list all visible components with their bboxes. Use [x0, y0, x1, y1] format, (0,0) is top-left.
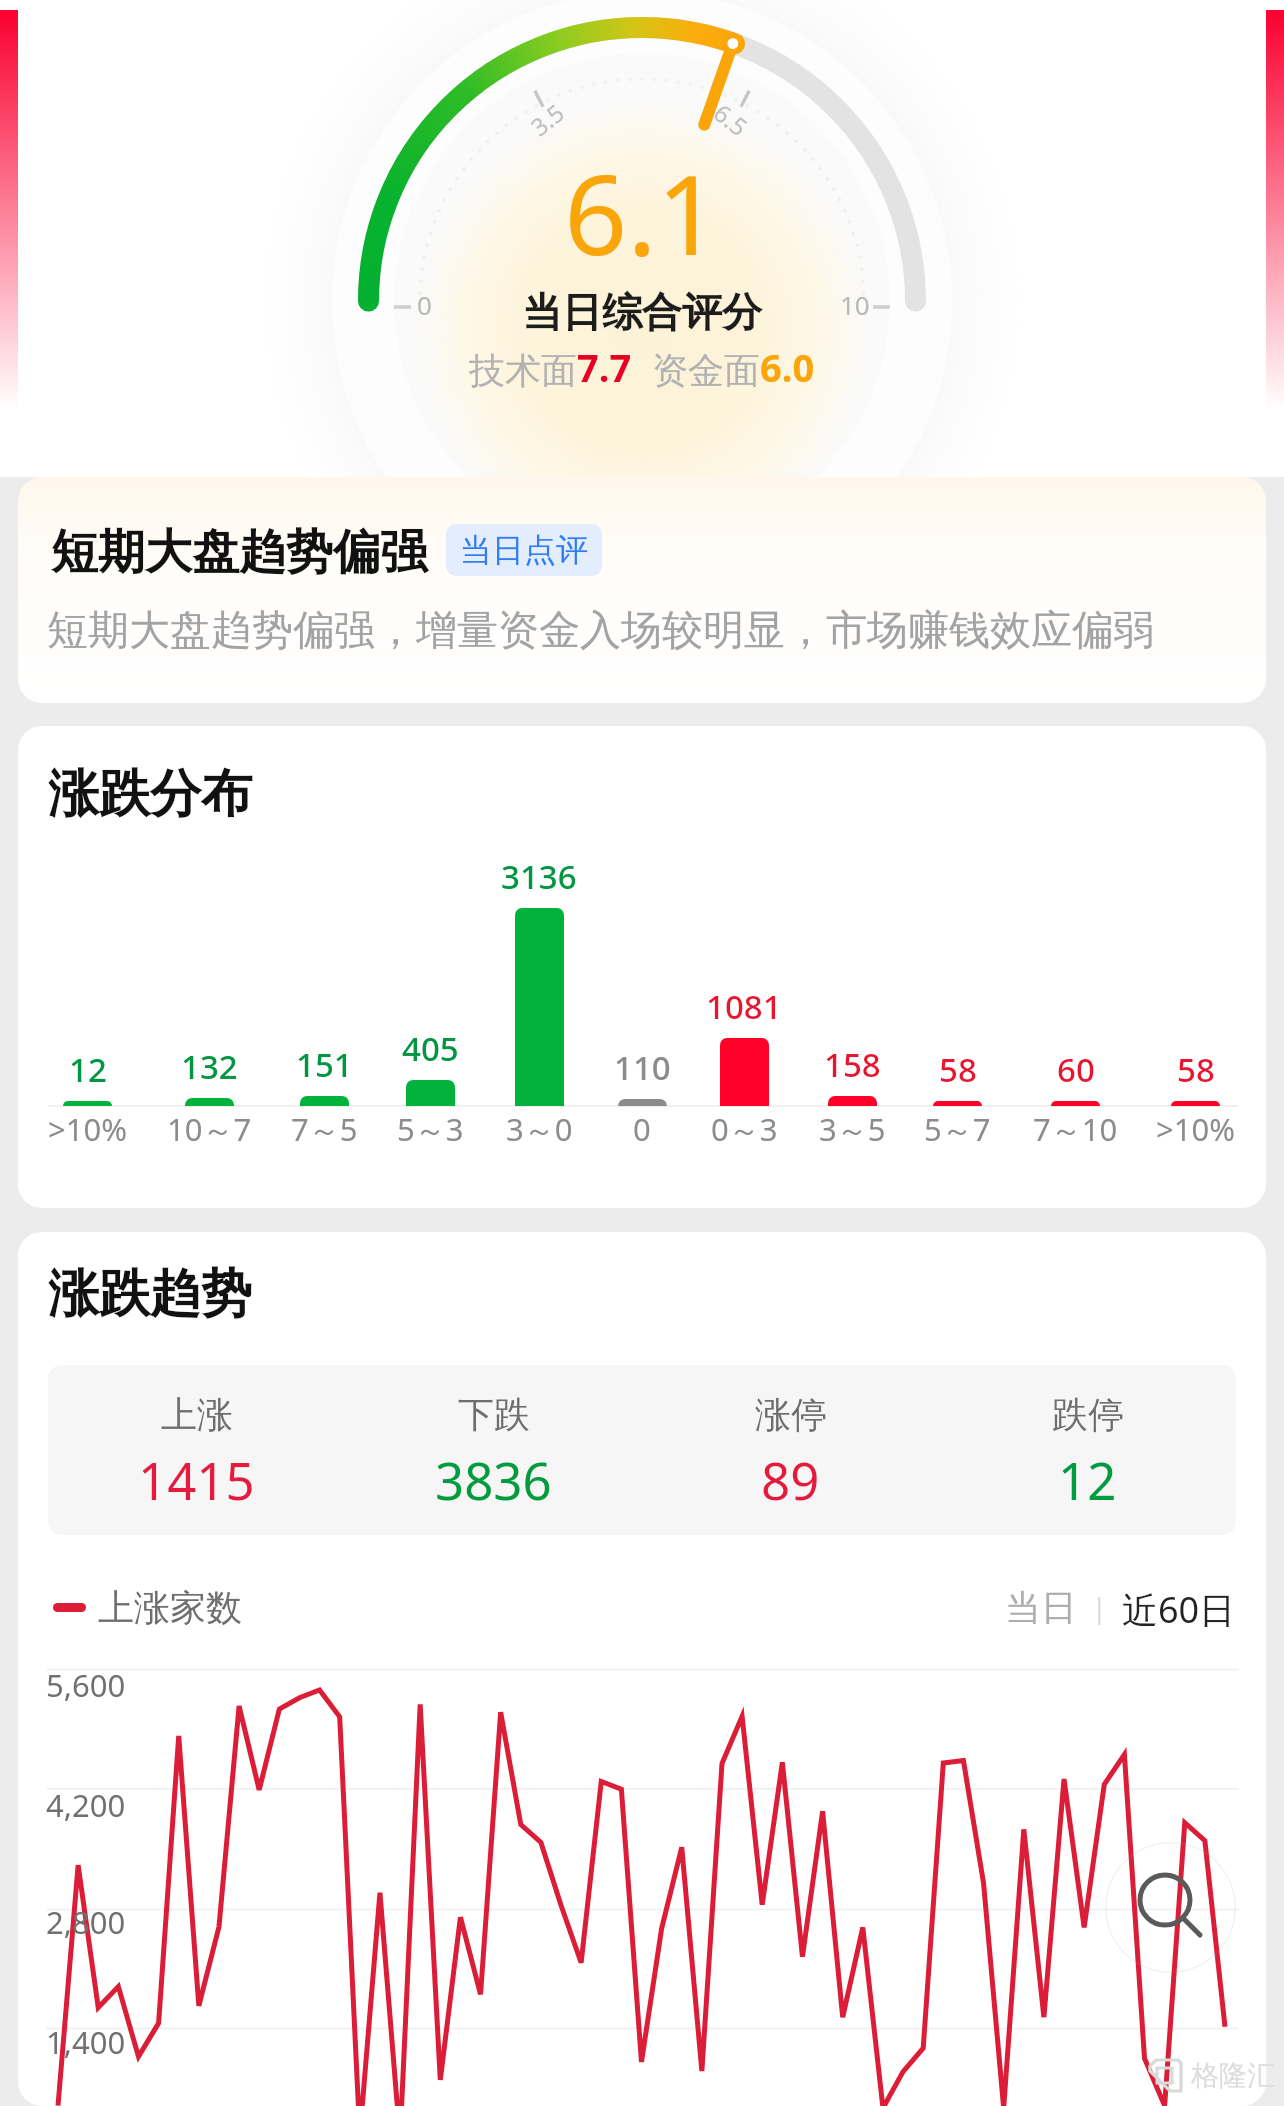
staticText: 7～10	[1033, 1108, 1118, 1150]
staticText: 当日点评	[460, 530, 588, 570]
button[interactable]: 58	[1125, 816, 1265, 1106]
staticText: 3836	[435, 1445, 552, 1514]
staticText: 58	[1177, 1047, 1215, 1092]
staticText: 上涨家数	[98, 1585, 242, 1629]
staticText: 短期大盘趋势偏强，增量资金入场较明显，市场赚钱效应偏弱	[47, 605, 1154, 657]
staticText: 12	[1058, 1445, 1117, 1514]
staticText: 短期大盘趋势偏强	[51, 523, 427, 582]
staticText: 110	[614, 1045, 671, 1090]
staticText: 5,600	[46, 1664, 126, 1706]
button[interactable]: 涨停	[642, 1386, 939, 1514]
staticText: 3～0	[506, 1108, 573, 1150]
staticText: 3.5	[523, 96, 570, 143]
staticText: >10%	[1156, 1108, 1235, 1150]
button[interactable]: 12	[18, 816, 157, 1106]
staticText: 7～5	[291, 1108, 358, 1150]
staticText: 涨跌分布	[48, 762, 252, 826]
staticText: 当日	[1005, 1585, 1077, 1629]
staticText: 0～3	[711, 1108, 778, 1150]
staticText: 3～5	[819, 1108, 886, 1150]
staticText: 跌停	[1052, 1392, 1124, 1437]
staticText: 4,200	[46, 1784, 126, 1826]
staticText: 151	[296, 1042, 353, 1087]
button[interactable]: 151	[254, 816, 394, 1106]
staticText: 涨跌趋势	[48, 1262, 252, 1326]
staticText: 158	[824, 1042, 881, 1087]
staticText: 资金面	[652, 348, 760, 393]
staticText: 89	[761, 1445, 820, 1514]
button[interactable]: 1081	[674, 816, 814, 1106]
staticText: 7.7	[577, 341, 632, 393]
staticText: 1415	[138, 1445, 255, 1514]
button[interactable]: 132	[139, 816, 279, 1106]
button[interactable]: 110	[572, 816, 712, 1106]
staticText: 下跌	[458, 1392, 530, 1437]
staticText: 405	[402, 1026, 459, 1071]
staticText: 0	[633, 1108, 651, 1150]
button[interactable]: Search	[1105, 1842, 1236, 1973]
staticText: 技术面	[469, 348, 577, 393]
staticText: 涨停	[755, 1392, 827, 1437]
staticText: 格隆汇	[1191, 2058, 1275, 2093]
staticText: 1081	[706, 984, 782, 1029]
staticText: |	[1077, 1588, 1122, 1626]
button[interactable]: 当日	[1005, 1585, 1236, 1629]
button[interactable]: 58	[887, 816, 1027, 1106]
staticText: 0	[417, 287, 432, 322]
button[interactable]: 短期大盘趋势偏强	[18, 477, 1266, 703]
button[interactable]: 下跌	[345, 1386, 642, 1514]
staticText: >10%	[48, 1108, 127, 1150]
staticText: 12	[69, 1047, 107, 1092]
button[interactable]: 158	[782, 816, 922, 1106]
button[interactable]: 405	[360, 816, 500, 1106]
staticText: 当日综合评分	[0, 287, 1284, 337]
button[interactable]: 跌停	[939, 1386, 1236, 1514]
staticText: 3136	[501, 854, 577, 899]
staticText: 5～7	[924, 1108, 991, 1150]
button[interactable]: 3136	[469, 816, 609, 1106]
button[interactable]: 上涨	[48, 1386, 345, 1514]
staticText: 60	[1057, 1047, 1095, 1092]
staticText: 5～3	[397, 1108, 464, 1150]
staticText: 6.1	[0, 137, 1284, 287]
staticText: 58	[939, 1047, 977, 1092]
button[interactable]: 60	[1005, 816, 1145, 1106]
staticText: 上涨	[161, 1392, 233, 1437]
staticText: 2,800	[46, 1901, 126, 1943]
staticText: 10	[840, 287, 870, 322]
staticText: 10～7	[167, 1108, 252, 1150]
staticText: 近60日	[1122, 1585, 1236, 1629]
staticText: 6.5	[707, 96, 754, 143]
staticText: 132	[181, 1044, 238, 1089]
staticText: 6.0	[760, 341, 815, 393]
staticText: 1,400	[46, 2021, 126, 2063]
